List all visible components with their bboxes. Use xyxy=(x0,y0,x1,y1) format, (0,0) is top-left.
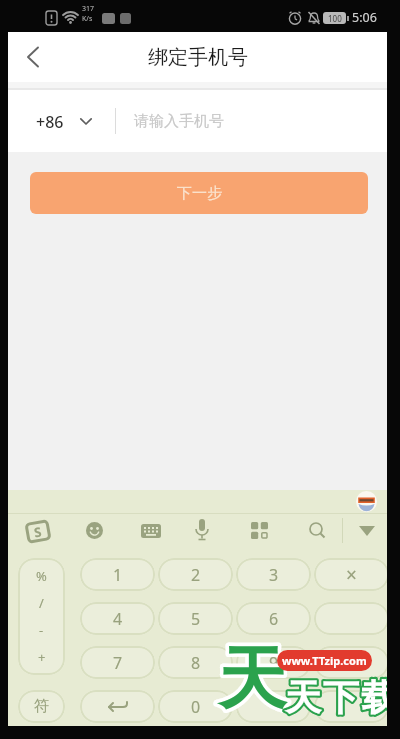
button[interactable] xyxy=(314,646,387,679)
button[interactable] xyxy=(251,522,268,539)
staticText: www.TTzip.com xyxy=(282,653,367,668)
staticText: 9 xyxy=(269,652,279,674)
staticText: S xyxy=(33,522,44,541)
button[interactable]: 6 xyxy=(236,602,311,635)
button[interactable] xyxy=(314,602,387,635)
button[interactable] xyxy=(86,522,103,539)
staticText: 下一步 xyxy=(177,184,222,203)
button[interactable]: 3 xyxy=(236,558,311,591)
button[interactable]: 5 xyxy=(158,602,233,635)
button[interactable] xyxy=(80,690,155,723)
button[interactable]: 8 xyxy=(158,646,233,679)
staticText: 符 xyxy=(34,697,49,716)
staticText: / xyxy=(39,594,44,612)
button[interactable]: 7 xyxy=(80,646,155,679)
button[interactable]: 下一步 xyxy=(30,172,368,214)
staticText: 3 xyxy=(269,564,279,586)
staticText: × xyxy=(346,562,357,588)
staticText: 天 xyxy=(218,637,286,723)
button[interactable] xyxy=(314,690,387,723)
button[interactable]: % xyxy=(18,558,65,675)
staticText: 1 xyxy=(113,564,123,586)
staticText: 7 xyxy=(113,652,123,674)
button[interactable]: 9 xyxy=(236,646,311,679)
button[interactable]: S xyxy=(24,519,52,544)
button[interactable]: 1 xyxy=(80,558,155,591)
button[interactable] xyxy=(16,40,50,74)
staticText: +86 xyxy=(36,111,64,133)
staticText: 绑定手机号 xyxy=(148,45,248,70)
staticText: 0 xyxy=(191,696,201,718)
staticText: 天下载 xyxy=(284,675,387,720)
staticText: 天下载 xyxy=(284,675,387,720)
button[interactable] xyxy=(141,524,161,538)
button[interactable]: 符 xyxy=(18,690,65,723)
button[interactable]: × xyxy=(314,558,387,591)
staticText: 6 xyxy=(269,608,279,630)
button[interactable]: 4 xyxy=(80,602,155,635)
button[interactable]: +86 xyxy=(8,90,387,152)
button[interactable]: 2 xyxy=(158,558,233,591)
staticText: - xyxy=(39,621,44,639)
staticText: 5 xyxy=(191,608,201,630)
button[interactable] xyxy=(236,690,311,723)
staticText: % xyxy=(36,567,47,585)
staticText: K/s xyxy=(82,14,93,24)
button[interactable] xyxy=(194,519,210,543)
staticText: 2 xyxy=(191,564,201,586)
staticText: 100 xyxy=(328,13,342,24)
button[interactable] xyxy=(359,526,375,536)
staticText: 5:06 xyxy=(352,9,377,26)
staticText: 4 xyxy=(113,608,123,630)
staticText: 请输入手机号 xyxy=(134,112,224,131)
button[interactable] xyxy=(309,522,326,539)
staticText: 8 xyxy=(191,652,201,674)
button[interactable]: 0 xyxy=(158,690,233,723)
staticText: + xyxy=(38,648,46,666)
staticText: 317 xyxy=(82,4,95,14)
staticText: 天 xyxy=(218,637,286,723)
